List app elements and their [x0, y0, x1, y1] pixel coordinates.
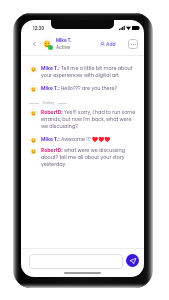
button[interactable]: More options	[128, 39, 138, 49]
staticText: 12:30	[33, 25, 45, 31]
staticText: RobertD: Yes!!! sorry, I had to run some…	[41, 109, 138, 130]
button[interactable]: Mike T.: Hello??? are you there?	[29, 85, 138, 94]
staticText: Active	[56, 44, 71, 50]
button[interactable]: Mike T.: Tell me a little bit more about…	[29, 65, 138, 79]
staticText: Mike T.: Hello??? are you there?	[41, 85, 118, 92]
staticText: Add	[106, 41, 116, 47]
button[interactable]: RobertD: Yes!!! sorry, I had to run some…	[29, 109, 138, 130]
staticText: RobertD: what were we discussing about? …	[41, 147, 138, 168]
staticText: Mike T.	[56, 37, 72, 43]
button[interactable]: Send	[126, 254, 139, 267]
button[interactable]: Add	[100, 41, 116, 47]
staticText: Today	[42, 100, 55, 106]
button[interactable]	[29, 254, 123, 269]
button[interactable]: Back	[30, 39, 39, 48]
staticText: Mike T.: Tell me a little bit more about…	[41, 65, 138, 79]
button[interactable]: Mike T.: Awesome !!! ♥♥♥	[29, 136, 138, 145]
staticText: Mike T.: Awesome !!! ♥♥♥	[41, 136, 111, 143]
button[interactable]: RobertD: what were we discussing about? …	[29, 147, 138, 168]
